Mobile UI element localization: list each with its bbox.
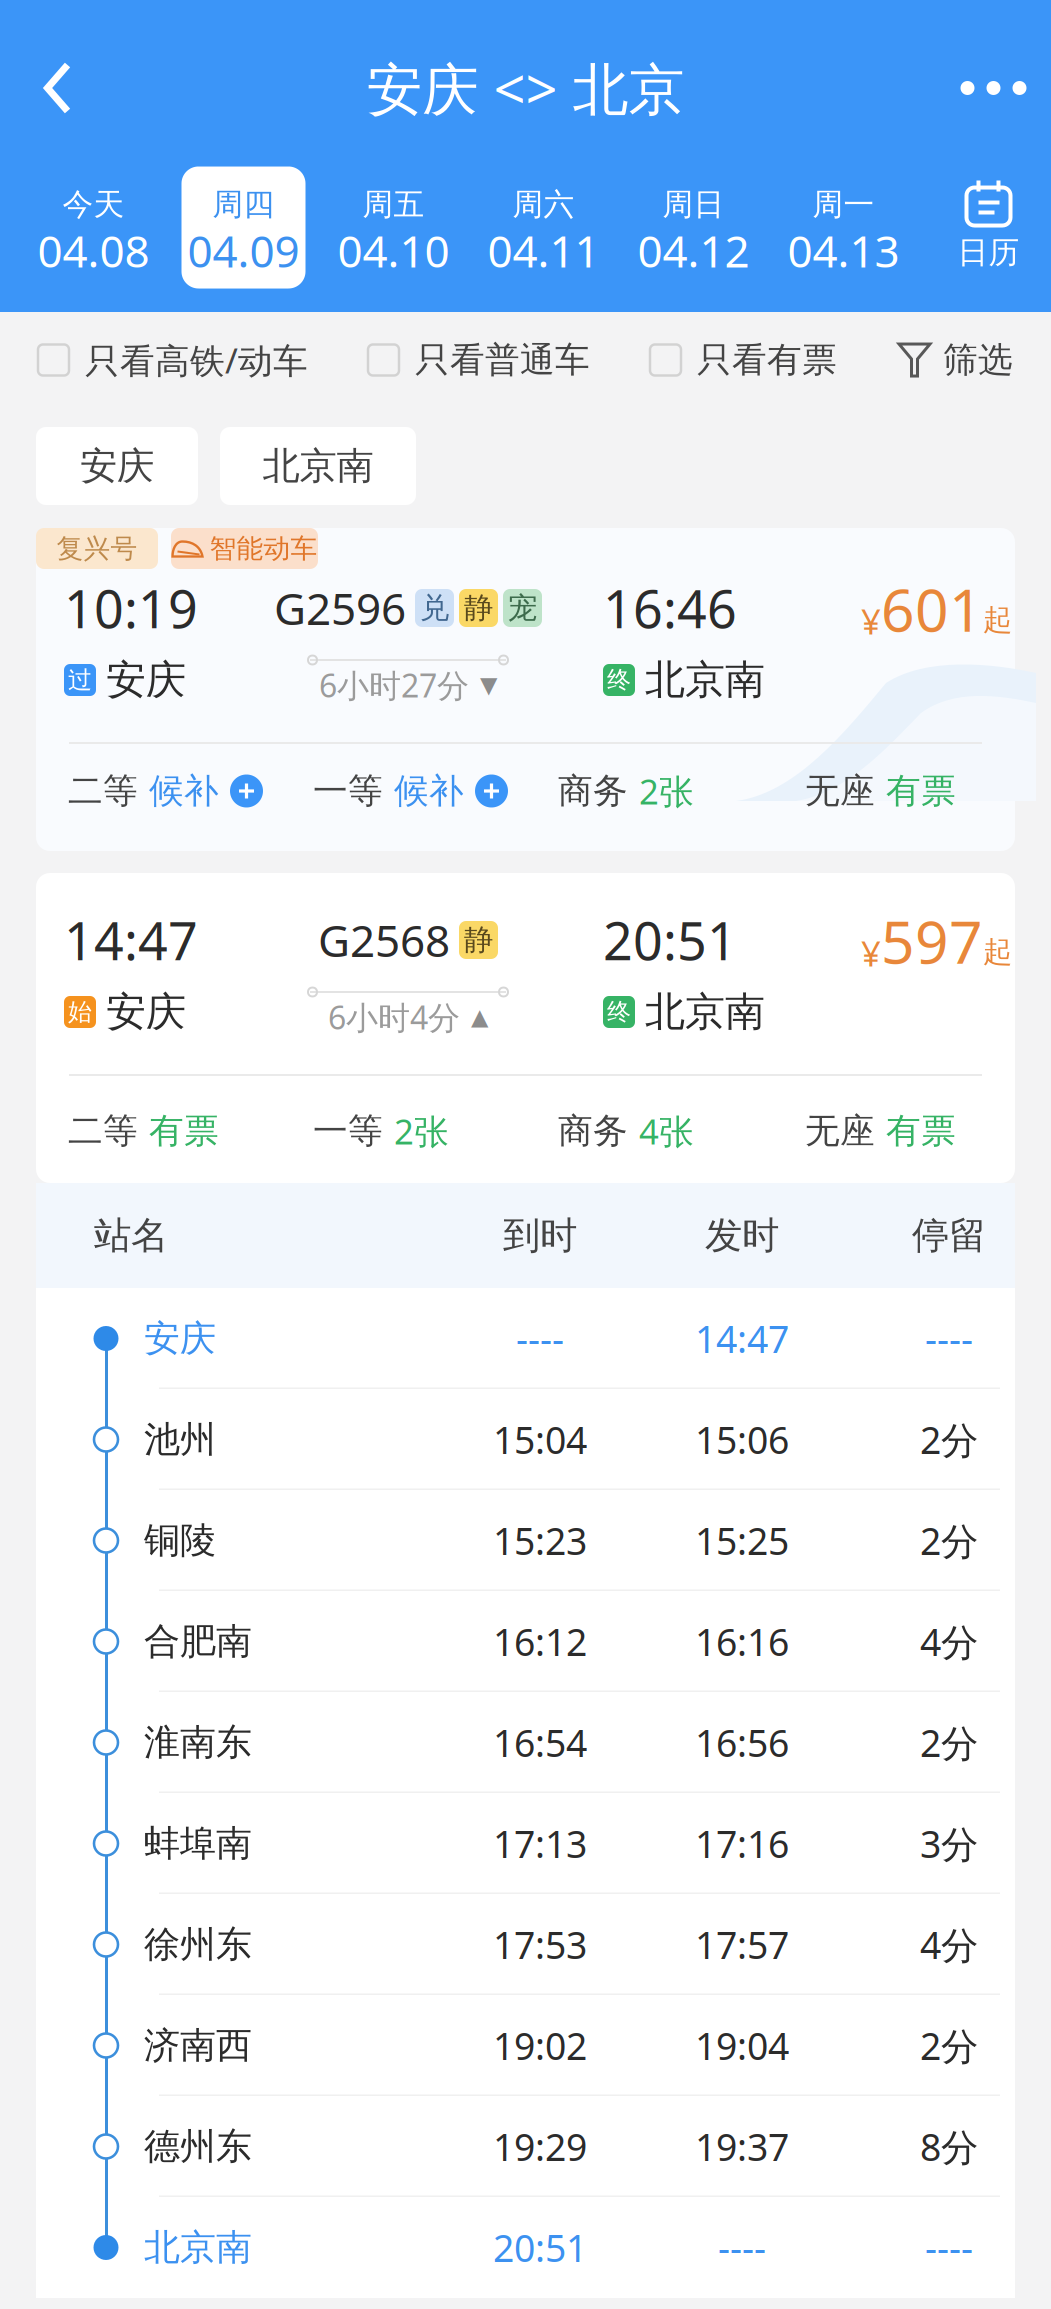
staticText: 16:54 xyxy=(493,1718,587,1767)
staticText: 停留 xyxy=(912,1213,986,1258)
staticText: 北京南 xyxy=(645,987,765,1036)
staticText: 15:04 xyxy=(493,1415,587,1464)
staticText: 静 xyxy=(464,922,493,958)
staticText: ---- xyxy=(516,1314,564,1363)
staticText: 淮南东 xyxy=(144,1720,252,1765)
staticText: 17:57 xyxy=(695,1920,789,1969)
button[interactable]: 周五 xyxy=(318,166,468,288)
staticText: 16:12 xyxy=(493,1617,587,1666)
staticText: 商务 xyxy=(558,770,628,812)
staticText: 2分 xyxy=(920,1415,978,1464)
staticText: 04.11 xyxy=(487,221,599,280)
button[interactable]: 商务 xyxy=(558,1108,694,1154)
staticText: 3分 xyxy=(920,1819,978,1868)
button[interactable]: 周六 xyxy=(468,166,618,288)
button[interactable]: More options xyxy=(928,33,1051,143)
staticText: 池州 xyxy=(144,1417,216,1462)
staticText: 北京南 xyxy=(645,655,765,704)
staticText: 04.08 xyxy=(37,221,149,280)
staticText: 只看普通车 xyxy=(415,339,590,381)
button[interactable]: 只看有票 xyxy=(650,339,837,381)
staticText: 到时 xyxy=(503,1213,577,1258)
staticText: 04.09 xyxy=(187,221,299,280)
staticText: 19:37 xyxy=(695,2122,789,2171)
staticText: ---- xyxy=(925,1314,973,1363)
button[interactable]: 二等 xyxy=(68,770,263,812)
staticText: 济南西 xyxy=(144,2023,252,2068)
staticText: 04.13 xyxy=(787,221,899,280)
staticText: 复兴号 xyxy=(56,532,137,565)
staticText: 日历 xyxy=(957,234,1019,271)
staticText: 一等 xyxy=(313,1110,383,1152)
button[interactable]: 周一 xyxy=(768,166,918,288)
staticText: 安庆 xyxy=(80,443,154,489)
staticText: 起 xyxy=(983,602,1012,638)
staticText: 站名 xyxy=(94,1213,168,1258)
staticText: 宠 xyxy=(508,590,537,626)
staticText: ▼ xyxy=(480,672,497,698)
staticText: 有票 xyxy=(149,1110,219,1152)
staticText: 智能动车 xyxy=(209,532,317,565)
button[interactable]: 商务 xyxy=(558,768,694,814)
staticText: 6小时27分 xyxy=(319,664,469,706)
staticText: ---- xyxy=(718,2223,766,2272)
staticText: 只看高铁/动车 xyxy=(85,337,308,383)
staticText: 2张 xyxy=(394,1108,449,1154)
staticText: ¥ xyxy=(861,598,881,644)
staticText: 安庆 xyxy=(144,1316,216,1361)
button[interactable]: Calendar xyxy=(918,166,1051,288)
staticText: 15:06 xyxy=(695,1415,789,1464)
staticText: 2分 xyxy=(920,1718,978,1767)
staticText: 静 xyxy=(464,590,493,626)
staticText: ¥ xyxy=(861,930,881,976)
staticText: 筛选 xyxy=(943,339,1013,381)
staticText: 20:51 xyxy=(493,2223,587,2272)
staticText: 今天 xyxy=(62,186,124,223)
staticText: 周日 xyxy=(662,186,724,223)
button[interactable]: 一等 xyxy=(313,1108,449,1154)
staticText: 20:51 xyxy=(603,905,737,975)
button[interactable]: 周四 xyxy=(168,166,318,288)
staticText: 14:47 xyxy=(64,905,198,975)
button[interactable]: 一等 xyxy=(313,770,508,812)
staticText: 16:46 xyxy=(603,573,737,643)
button[interactable]: 14:47 xyxy=(36,873,1015,1183)
staticText: 始 xyxy=(68,997,92,1027)
button[interactable]: 无座 xyxy=(805,1110,956,1152)
staticText: 铜陵 xyxy=(144,1518,216,1563)
staticText: 安庆 xyxy=(106,655,186,704)
button[interactable]: 北京南 xyxy=(220,427,416,505)
staticText: 周五 xyxy=(362,186,424,223)
staticText: 起 xyxy=(983,934,1012,970)
staticText: 安庆 xyxy=(106,987,186,1036)
staticText: 6小时4分 xyxy=(328,996,460,1038)
button[interactable]: 只看普通车 xyxy=(368,339,590,381)
staticText: 周六 xyxy=(512,186,574,223)
button[interactable]: 无座 xyxy=(805,770,956,812)
staticText: 商务 xyxy=(558,1110,628,1152)
staticText: 17:53 xyxy=(493,1920,587,1969)
button[interactable]: 只看高铁/动车 xyxy=(38,337,308,383)
button[interactable]: 今天 xyxy=(18,166,168,288)
staticText: 601 xyxy=(881,570,983,648)
button[interactable]: 周日 xyxy=(618,166,768,288)
button[interactable]: 二等 xyxy=(68,1110,219,1152)
staticText: 4分 xyxy=(920,1617,978,1666)
staticText: 2分 xyxy=(920,1516,978,1565)
staticText: 10:19 xyxy=(64,573,198,643)
staticText: 德州东 xyxy=(144,2124,252,2169)
button[interactable]: Back xyxy=(0,33,122,143)
staticText: 二等 xyxy=(68,1110,138,1152)
staticText: 15:23 xyxy=(493,1516,587,1565)
staticText: 徐州东 xyxy=(144,1922,252,1967)
staticText: 北京南 xyxy=(262,443,373,489)
staticText: 蚌埠南 xyxy=(144,1821,252,1866)
staticText: 14:47 xyxy=(695,1314,789,1363)
staticText: 周一 xyxy=(812,186,874,223)
staticText: 04.10 xyxy=(337,221,449,280)
button[interactable]: 筛选 xyxy=(897,339,1013,381)
button[interactable]: 安庆 xyxy=(36,427,198,505)
button[interactable]: 复兴号 xyxy=(36,528,1015,851)
staticText: 候补 xyxy=(149,770,219,812)
staticText: 无座 xyxy=(805,1110,875,1152)
